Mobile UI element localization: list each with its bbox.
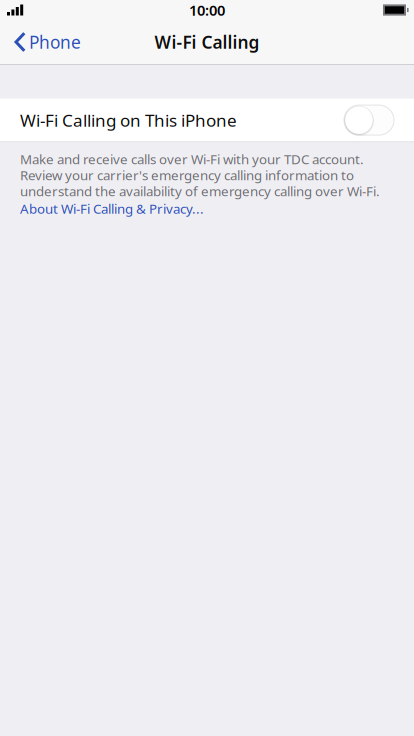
button[interactable]: About Wi-Fi Calling & Privacy... bbox=[20, 200, 394, 217]
staticText: Wi-Fi Calling bbox=[154, 30, 259, 53]
staticText: Wi-Fi Calling on This iPhone bbox=[20, 108, 237, 132]
staticText: About Wi-Fi Calling & Privacy... bbox=[20, 200, 204, 217]
button[interactable]: Wi-Fi Calling on This iPhone bbox=[0, 99, 414, 142]
staticText: Make and receive calls over Wi-Fi with y… bbox=[20, 150, 380, 200]
button[interactable]: Phone bbox=[0, 20, 91, 64]
staticText: 10:00 bbox=[189, 0, 225, 20]
staticText: Phone bbox=[29, 30, 81, 53]
